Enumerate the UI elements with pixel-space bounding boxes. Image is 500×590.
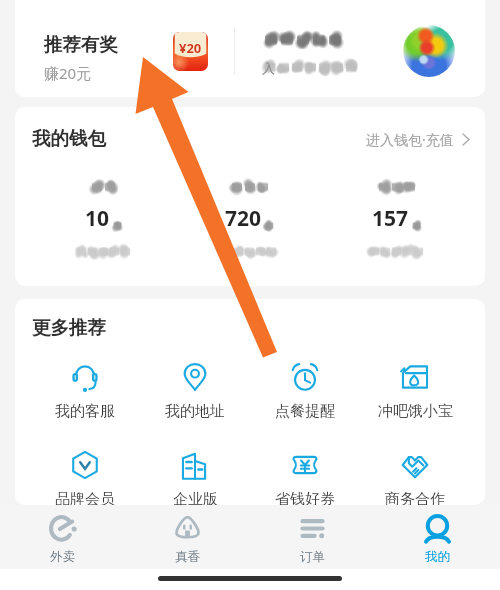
staticText: 外卖	[50, 549, 75, 565]
staticText: 商务合作	[385, 490, 445, 505]
button[interactable]: 720	[176, 181, 323, 257]
staticText: 入	[262, 60, 275, 76]
button[interactable]: 省钱好券	[250, 451, 360, 505]
staticText: 点餐提醒	[275, 402, 335, 421]
button[interactable]: 进入钱包·充值	[366, 129, 470, 149]
staticText: 企业版	[173, 490, 218, 505]
staticText: 10	[85, 204, 110, 233]
button[interactable]: 冲吧饿小宝	[360, 363, 470, 421]
button[interactable]: 157	[323, 181, 470, 257]
staticText: 我的客服	[55, 402, 115, 421]
staticText: 进入钱包·充值	[366, 130, 454, 149]
staticText: 我的	[425, 549, 450, 565]
button[interactable]: 订单	[250, 505, 375, 567]
staticText: ¥20	[179, 39, 202, 57]
staticText: 冲吧饿小宝	[378, 402, 453, 421]
button[interactable]: 企业版	[140, 451, 250, 505]
button[interactable]: 我的地址	[140, 363, 250, 421]
button[interactable]: 点餐提醒	[250, 363, 360, 421]
staticText: Baidu	[378, 547, 430, 573]
button[interactable]: 我的	[375, 505, 500, 567]
button[interactable]: 我的客服	[30, 363, 140, 421]
staticText: 我的地址	[165, 402, 225, 421]
button[interactable]: 外卖	[0, 505, 125, 567]
staticText: 经验	[432, 551, 466, 572]
staticText: 省钱好券	[275, 490, 335, 505]
button[interactable]: 商务合作	[360, 451, 470, 505]
button[interactable]: 品牌会员	[30, 451, 140, 505]
staticText: 订单	[300, 549, 325, 565]
staticText: 赚20元	[44, 63, 92, 83]
staticText: 品牌会员	[55, 490, 115, 505]
staticText: 我的钱包	[32, 127, 106, 150]
button[interactable]: 真香	[125, 505, 250, 567]
button[interactable]: 入	[235, 0, 485, 97]
staticText: 更多推荐	[32, 316, 106, 339]
button[interactable]: 推荐有奖	[15, 0, 234, 97]
staticText: 720	[225, 204, 262, 233]
button[interactable]: 10	[30, 181, 176, 257]
staticText: 真香	[175, 549, 200, 565]
staticText: 推荐有奖	[44, 33, 118, 56]
staticText: 157	[372, 204, 409, 233]
